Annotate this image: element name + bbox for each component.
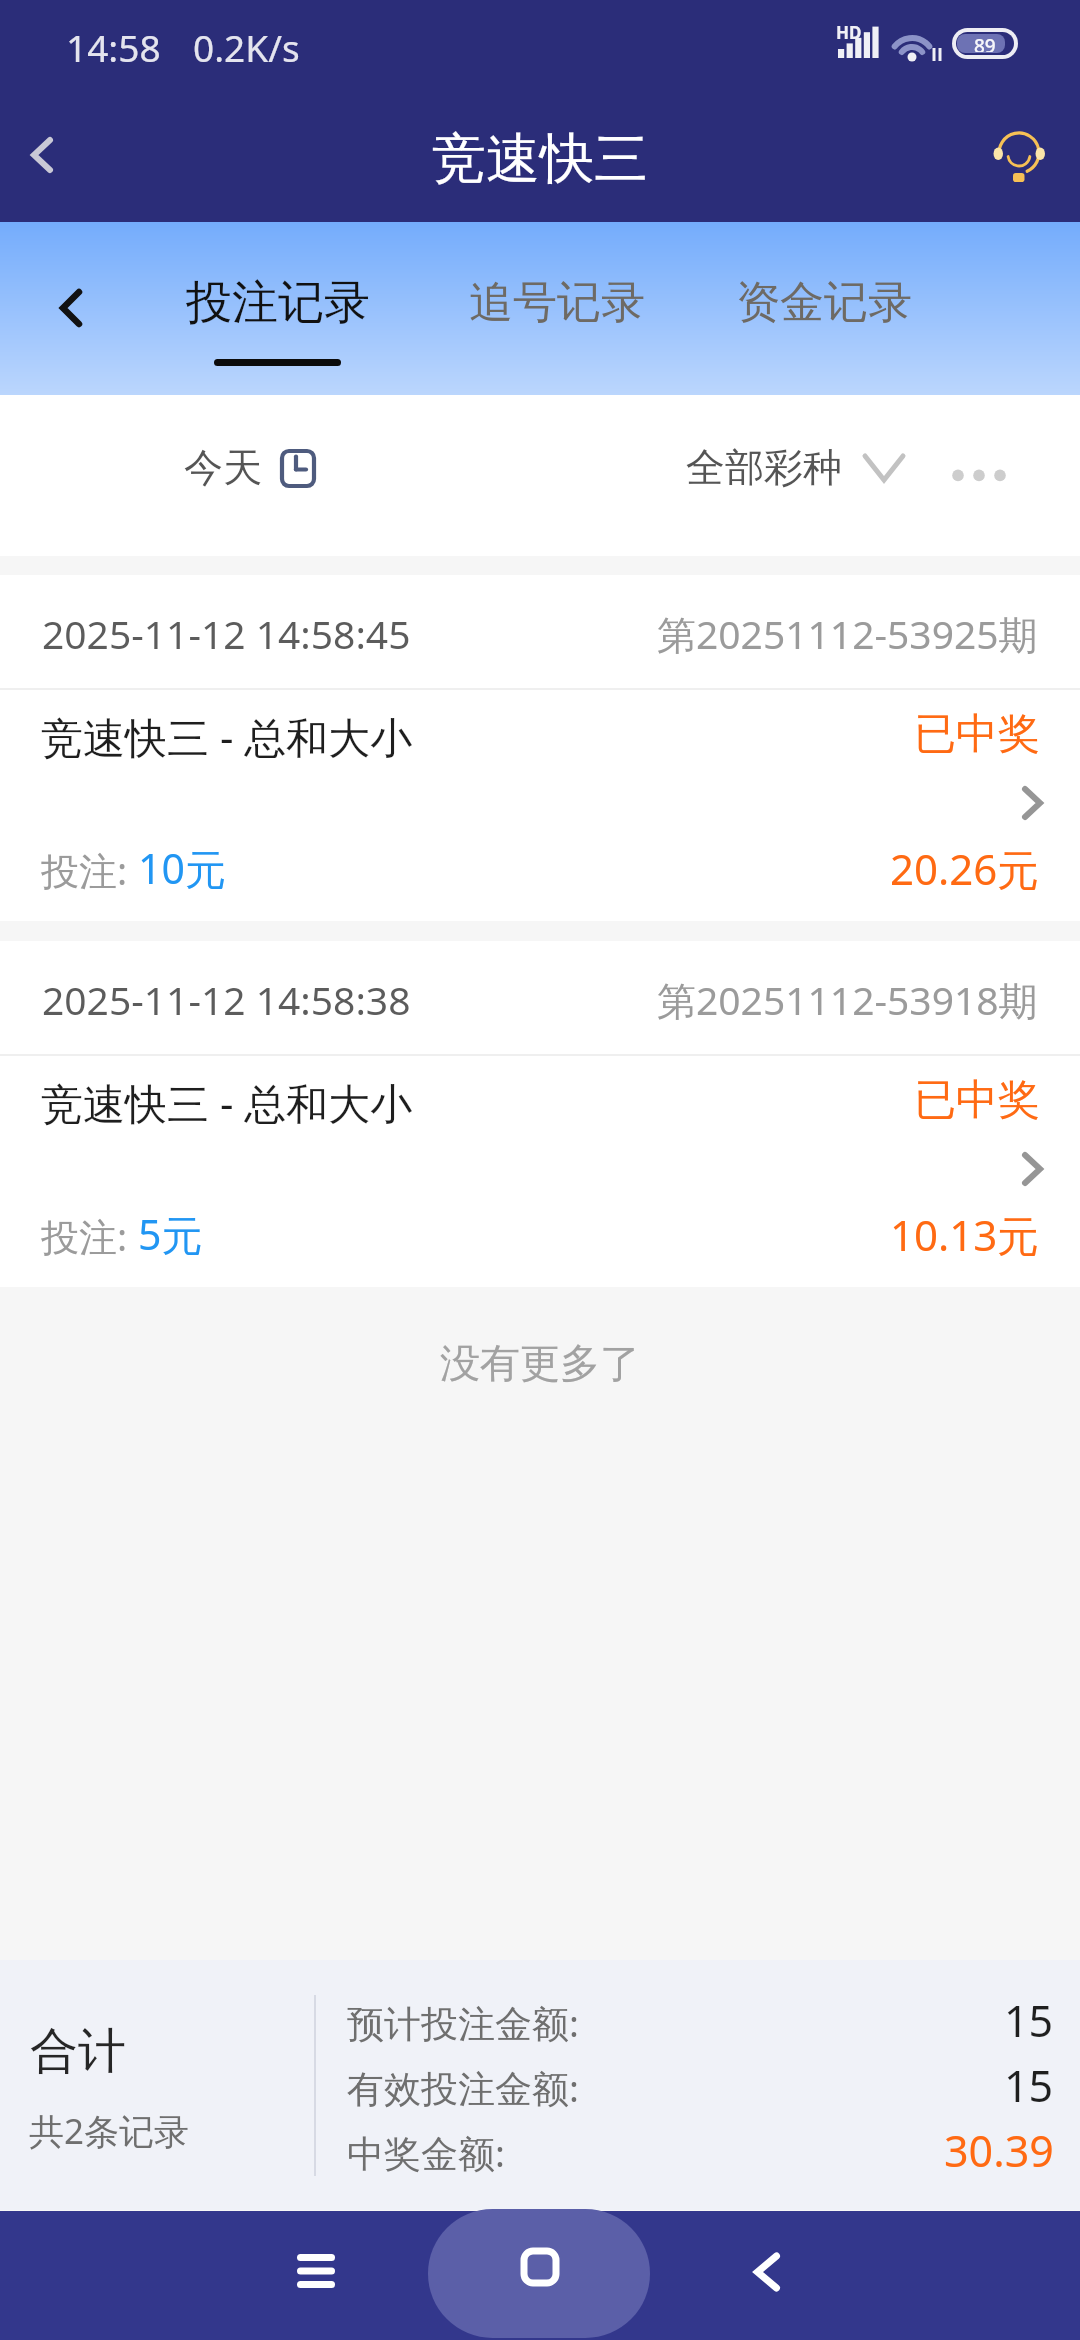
button[interactable]: More options — [934, 443, 1024, 507]
staticText: 2025-11-12 14:58:38 — [42, 973, 411, 1026]
button[interactable]: Back — [727, 2232, 807, 2312]
staticText: 20.26元 — [890, 840, 1040, 897]
staticText: 已中奖 — [914, 1074, 1040, 1127]
button[interactable]: 竞速快三 - 总和大小 — [0, 1056, 1080, 1287]
staticText: 竞速快三 — [432, 125, 648, 193]
staticText: 合计 — [30, 2021, 126, 2081]
button[interactable]: Customer service — [993, 131, 1053, 191]
staticText: 15 — [1004, 1991, 1054, 2050]
button[interactable]: Back — [6, 120, 76, 190]
button[interactable]: 追号记录 — [469, 275, 645, 330]
button[interactable]: 竞速快三 - 总和大小 — [0, 690, 1080, 921]
button[interactable]: Back — [31, 270, 107, 346]
staticText: 10元 — [138, 840, 226, 896]
staticText: 共2条记录 — [29, 2107, 190, 2155]
staticText: 全部彩种 — [686, 443, 842, 492]
staticText: 10.13元 — [890, 1206, 1040, 1263]
staticText: 今天 — [184, 443, 262, 492]
staticText: 89 — [974, 33, 996, 52]
staticText: 资金记录 — [736, 275, 912, 330]
staticText: 第20251112-53918期 — [657, 973, 1038, 1026]
staticText: 5元 — [138, 1206, 203, 1262]
button[interactable]: 投注记录 — [186, 274, 370, 332]
staticText: 没有更多了 — [440, 1338, 640, 1388]
staticText: 投注: — [41, 844, 138, 896]
staticText: 30.39 — [944, 2121, 1054, 2180]
staticText: 2025-11-12 14:58:45 — [42, 607, 411, 660]
staticText: HD — [836, 21, 862, 44]
staticText: 竞速快三 - 总和大小 — [41, 708, 413, 765]
staticText: 中奖金额: — [347, 2127, 505, 2178]
staticText: 投注: — [41, 1210, 138, 1262]
button[interactable]: Home — [428, 2209, 650, 2338]
staticText: 追号记录 — [469, 275, 645, 330]
button[interactable]: 全部彩种 — [686, 443, 906, 492]
staticText: 预计投注金额: — [347, 1997, 579, 2048]
staticText: 14:58 — [66, 22, 161, 72]
staticText: 有效投注金额: — [347, 2062, 579, 2113]
staticText: 投注记录 — [186, 274, 370, 332]
button[interactable]: 今天 — [184, 443, 314, 492]
staticText: 竞速快三 - 总和大小 — [41, 1074, 413, 1131]
staticText: 15 — [1004, 2056, 1054, 2115]
staticText: 0.2K/s — [193, 22, 300, 72]
button[interactable]: 资金记录 — [736, 275, 912, 330]
staticText: 第20251112-53925期 — [657, 607, 1038, 660]
staticText: 已中奖 — [914, 708, 1040, 761]
button[interactable]: Recent apps — [276, 2231, 356, 2311]
